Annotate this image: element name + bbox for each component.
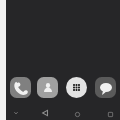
button[interactable]: Contacts: [37, 77, 58, 98]
button[interactable]: Home: [67, 105, 87, 120]
button[interactable]: Phone: [10, 77, 31, 98]
button[interactable]: All apps: [66, 77, 87, 98]
button[interactable]: Messages: [95, 77, 116, 98]
button[interactable]: Back: [35, 104, 55, 120]
button[interactable]: Hide keyboard: [6, 104, 26, 120]
button[interactable]: Recents: [100, 105, 120, 120]
